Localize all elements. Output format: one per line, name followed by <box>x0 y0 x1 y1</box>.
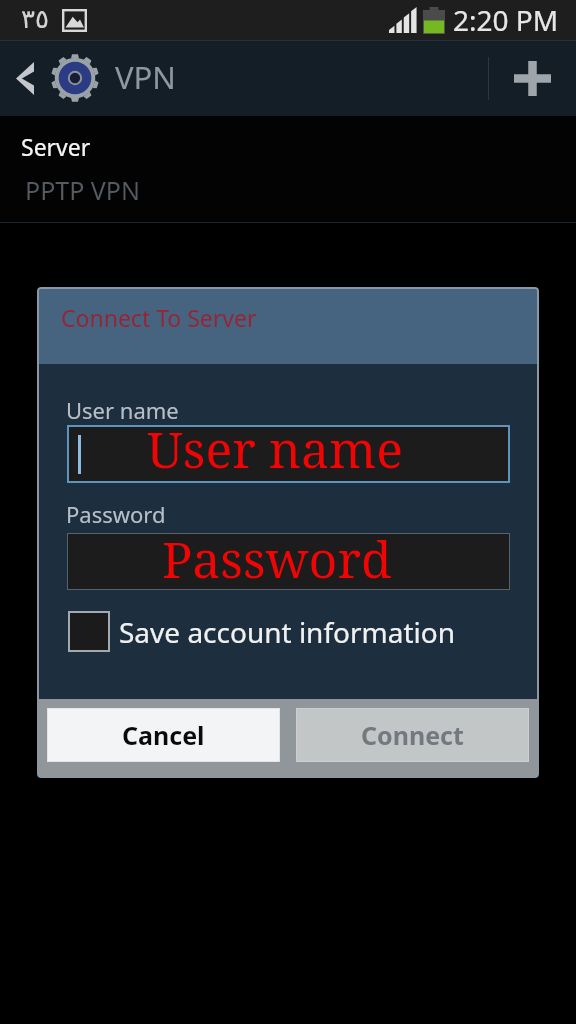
button[interactable]: Connect <box>296 708 529 762</box>
button[interactable]: Save account information <box>68 611 456 652</box>
staticText: Connect <box>361 718 464 752</box>
staticText: User name <box>66 395 179 425</box>
staticText: Save account information <box>119 613 456 651</box>
staticText: Password <box>66 499 166 529</box>
staticText: PPTP VPN <box>25 173 140 207</box>
button[interactable]: Add VPN profile <box>488 40 576 116</box>
button[interactable]: Back to VPN list <box>0 40 310 116</box>
staticText: Connect To Server <box>61 302 257 333</box>
staticText: User name <box>147 415 404 473</box>
staticText: VPN <box>115 56 176 98</box>
button[interactable]: Password input <box>67 533 510 590</box>
button[interactable]: Cancel <box>47 708 280 762</box>
staticText: 2:20 PM <box>453 1 559 39</box>
staticText: Password <box>162 525 392 582</box>
staticText: ٣٥ <box>21 4 49 34</box>
button[interactable]: PPTP VPN <box>0 169 576 222</box>
button[interactable]: User name input <box>67 425 510 483</box>
staticText: Server <box>21 131 91 162</box>
staticText: Cancel <box>122 718 205 752</box>
